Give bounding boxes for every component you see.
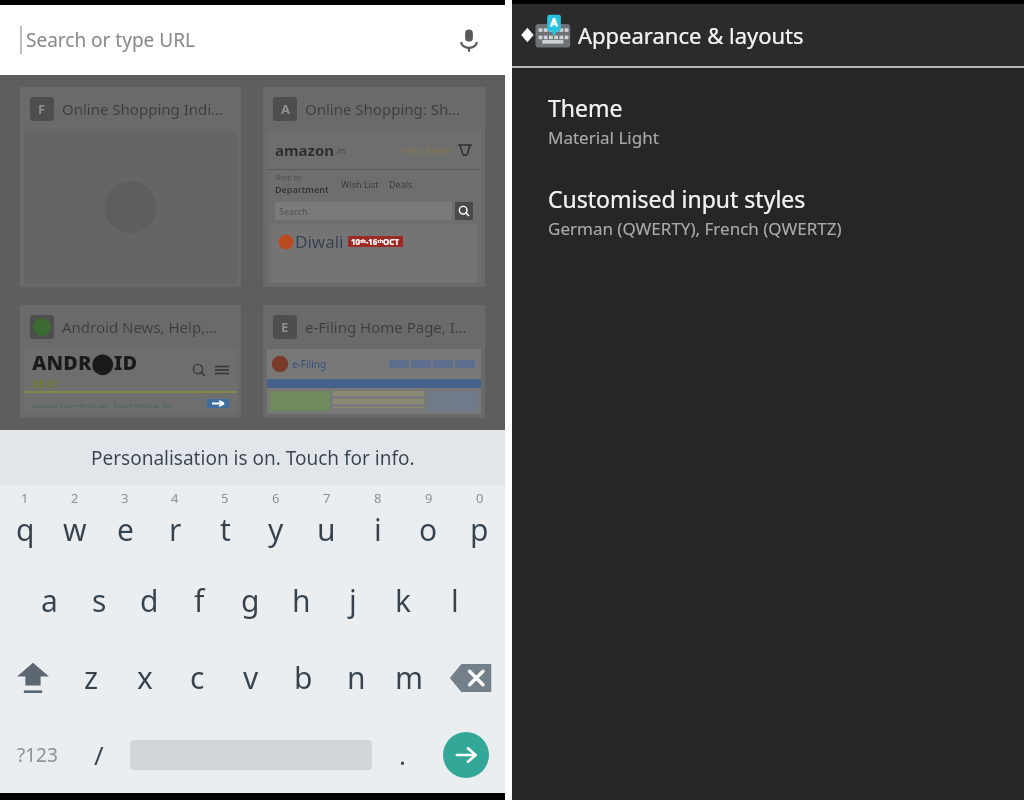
staticText: . (399, 737, 406, 772)
button[interactable]: s (74, 562, 124, 639)
staticText: k (395, 580, 412, 621)
button[interactable]: Voice search (449, 20, 489, 60)
staticText: Customised input styles (548, 183, 806, 214)
staticText: q (16, 509, 35, 550)
button[interactable]: z (65, 639, 118, 716)
button[interactable]: Space (123, 716, 378, 793)
button[interactable]: f (174, 562, 225, 639)
staticText: Online Shopping Indi… (62, 99, 223, 119)
staticText: e (117, 509, 134, 550)
staticText: 7 (323, 489, 331, 507)
staticText: ?123 (17, 742, 58, 768)
button[interactable]: v (224, 639, 277, 716)
staticText: Appearance & layouts (578, 20, 804, 50)
staticText: Search (279, 205, 308, 217)
button[interactable]: x (118, 639, 171, 716)
button[interactable]: a (24, 562, 74, 639)
button[interactable]: A (263, 87, 485, 287)
staticText: 9 (425, 489, 433, 507)
staticText: Personalisation is on. Touch for info. (91, 445, 415, 471)
staticText: y (268, 509, 284, 550)
staticText: 1 (21, 489, 29, 507)
button[interactable]: 4 (150, 485, 200, 562)
staticText: / (94, 737, 104, 772)
button[interactable]: . (378, 716, 427, 793)
button[interactable]: 8 (352, 485, 403, 562)
button[interactable]: Up (512, 4, 1024, 66)
button[interactable]: m (383, 639, 436, 716)
staticText: s (92, 580, 107, 621)
staticText: h (292, 580, 311, 621)
staticText: g (241, 580, 260, 621)
button[interactable]: j (327, 562, 378, 639)
button[interactable]: / (74, 716, 123, 793)
staticText: o (419, 509, 438, 550)
staticText: m (395, 657, 424, 698)
button[interactable]: Search or type URL (0, 5, 505, 75)
staticText: r (169, 509, 182, 550)
button[interactable]: Enter (427, 716, 505, 793)
staticText: p (470, 509, 489, 550)
button[interactable]: 6 (250, 485, 301, 562)
other: Up (514, 12, 578, 58)
button[interactable]: 9 (403, 485, 454, 562)
staticText: .in (335, 144, 346, 156)
button[interactable]: h (276, 562, 327, 639)
button[interactable]: 7 (301, 485, 352, 562)
staticText: www.landrover-testdrive.in (32, 399, 172, 408)
staticText: w (63, 509, 87, 550)
button[interactable]: b (277, 639, 330, 716)
staticText: e-Filing (292, 357, 327, 371)
button[interactable]: 1 (0, 485, 50, 562)
button[interactable]: 3 (100, 485, 150, 562)
button[interactable]: Shift (0, 639, 65, 716)
staticText: b (294, 657, 313, 698)
button[interactable]: E (263, 305, 485, 418)
staticText: d (140, 580, 159, 621)
button[interactable]: d (124, 562, 174, 639)
staticText: A (281, 100, 290, 118)
button[interactable]: Theme (548, 90, 1024, 151)
button[interactable]: 5 (200, 485, 250, 562)
button[interactable]: F (20, 87, 241, 287)
staticText: t (220, 509, 231, 550)
button[interactable]: l (429, 562, 480, 639)
button[interactable]: n (330, 639, 383, 716)
staticText: Wish List (341, 178, 379, 190)
staticText: Diwali (295, 230, 344, 253)
staticText: u (317, 509, 336, 550)
staticText: x (137, 657, 153, 698)
staticText: a (41, 580, 58, 621)
staticText: n (347, 657, 366, 698)
button[interactable]: Customised input styles (548, 181, 1024, 242)
staticText: 8 (374, 489, 382, 507)
staticText: f (194, 580, 205, 621)
staticText: 10ᵗʰ-16ᵗʰOCT (351, 236, 400, 247)
staticText: 2 (71, 489, 79, 507)
staticText: Theme (548, 92, 623, 123)
staticText: Hello, Rajesh (402, 145, 451, 156)
staticText: 5 (221, 489, 229, 507)
staticText: Material Light (548, 126, 659, 149)
staticText: z (84, 657, 99, 698)
button[interactable]: Android News, Help,… (20, 305, 241, 418)
button[interactable]: 2 (50, 485, 100, 562)
button[interactable]: k (378, 562, 429, 639)
button[interactable]: g (225, 562, 276, 639)
staticText: Android News, Help,… (62, 317, 218, 337)
staticText: German (QWERTY), French (QWERTZ) (548, 217, 842, 240)
staticText: l (451, 580, 459, 621)
staticText: 0 (476, 489, 484, 507)
staticText: e-Filing Home Page, I… (305, 317, 467, 337)
staticText: Deals (389, 178, 413, 190)
staticText: Department (275, 183, 329, 195)
button[interactable]: 0 (454, 485, 505, 562)
button[interactable]: ?123 (0, 716, 74, 793)
staticText: 4 (171, 489, 179, 507)
button[interactable]: Backspace (436, 639, 505, 716)
staticText: c (190, 657, 205, 698)
staticText: ANDR⬤ID (32, 349, 138, 376)
button[interactable]: Personalisation is on. Touch for info. (0, 430, 505, 485)
button[interactable]: c (171, 639, 224, 716)
staticText: Shop by (275, 173, 302, 183)
